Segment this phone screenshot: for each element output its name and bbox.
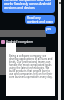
- button[interactable]: yes: [45, 26, 56, 34]
- staticText: Read any content and copy it: [27, 16, 53, 23]
- button[interactable]: We wrote companion code that works flawl…: [2, 0, 55, 13]
- staticText: yes: [46, 27, 51, 31]
- staticText: We wrote companion code that works flawl…: [4, 0, 53, 10]
- button[interactable]: Android ecosystem: [0, 37, 64, 47]
- staticText: Android ecosystem: [6, 40, 33, 44]
- button[interactable]: Read any content and copy it: [25, 15, 55, 24]
- staticText: Being a software company, we develop app…: [9, 54, 53, 78]
